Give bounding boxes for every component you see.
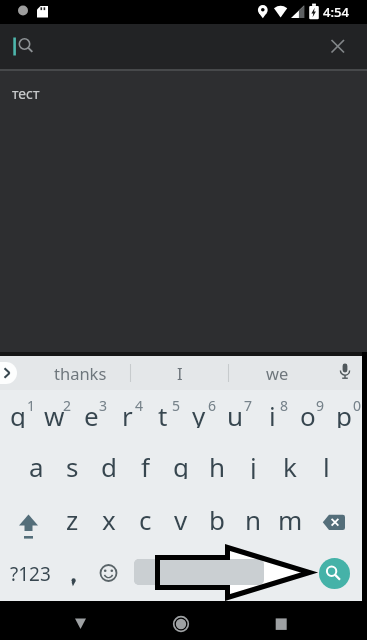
button[interactable]: j	[235, 449, 271, 479]
staticText: s	[66, 449, 79, 479]
staticText: 4:54	[323, 3, 349, 21]
staticText: i	[269, 398, 276, 428]
staticText: g	[173, 449, 189, 479]
button[interactable]: z	[54, 502, 90, 532]
staticText: q	[10, 398, 26, 428]
button[interactable]: g	[163, 449, 199, 479]
staticText: l	[323, 449, 330, 479]
button[interactable]	[54, 556, 90, 595]
staticText: n	[245, 502, 262, 532]
button[interactable]: a	[18, 449, 54, 479]
button[interactable]: we	[247, 358, 307, 388]
staticText: 3	[99, 396, 108, 412]
staticText: y	[192, 398, 206, 428]
staticText: d	[101, 449, 117, 479]
button[interactable]: n	[235, 502, 271, 532]
button[interactable]: 4	[129, 396, 149, 412]
button[interactable]: i	[254, 398, 290, 428]
button[interactable]: 8	[274, 396, 294, 412]
button[interactable]: c	[127, 502, 163, 532]
staticText: v	[174, 502, 188, 532]
staticText: we	[266, 362, 289, 384]
button[interactable]: I	[150, 358, 210, 388]
button[interactable]	[90, 556, 126, 595]
staticText: j	[250, 449, 257, 479]
button[interactable]: 2	[57, 396, 77, 412]
button[interactable]: q	[0, 398, 36, 428]
button[interactable]	[134, 559, 264, 585]
staticText: 5	[172, 396, 181, 412]
button[interactable]	[62, 606, 99, 640]
staticText: тест	[12, 84, 40, 103]
staticText: 0	[353, 396, 362, 412]
button[interactable]: 5	[166, 396, 186, 412]
staticText: 8	[280, 396, 289, 412]
button[interactable]: b	[199, 502, 235, 532]
staticText: f	[141, 449, 150, 479]
staticText: b	[209, 502, 225, 532]
staticText: h	[209, 449, 226, 479]
button[interactable]: u	[217, 398, 253, 428]
button[interactable]: v	[163, 502, 199, 532]
button[interactable]	[0, 24, 367, 69]
staticText: ?123	[10, 561, 51, 587]
staticText: 7	[244, 396, 253, 412]
staticText: I	[177, 362, 183, 384]
staticText: thanks	[54, 362, 107, 384]
button[interactable]: thanks	[35, 358, 125, 388]
button[interactable]: m	[272, 502, 308, 532]
button[interactable]: x	[91, 502, 127, 532]
button[interactable]: 9	[310, 396, 330, 412]
button[interactable]: s	[54, 449, 90, 479]
button[interactable]	[308, 503, 362, 542]
button[interactable]: 6	[202, 396, 222, 412]
staticText: u	[227, 398, 244, 428]
button[interactable]: l	[308, 449, 344, 479]
staticText: z	[66, 502, 79, 532]
staticText: o	[300, 398, 316, 428]
staticText: 9	[316, 396, 325, 412]
button[interactable]: 3	[93, 396, 113, 412]
button[interactable]: o	[290, 398, 326, 428]
button[interactable]: тест	[1, 83, 51, 103]
staticText: 1	[27, 396, 36, 412]
staticText: 2	[63, 396, 72, 412]
staticText: 6	[208, 396, 217, 412]
staticText: t	[158, 398, 168, 428]
button[interactable]	[0, 362, 17, 384]
button[interactable]: 0	[347, 396, 367, 412]
staticText: p	[336, 398, 352, 428]
button[interactable]: 7	[238, 396, 258, 412]
button[interactable]: h	[199, 449, 235, 479]
button[interactable]: t	[145, 398, 181, 428]
staticText: x	[102, 502, 116, 532]
staticText: k	[283, 449, 297, 479]
staticText: c	[139, 502, 152, 532]
staticText: w	[44, 398, 65, 428]
button[interactable]	[322, 32, 350, 60]
button[interactable]	[262, 606, 300, 640]
staticText: m	[278, 502, 303, 532]
button[interactable]: d	[91, 449, 127, 479]
button[interactable]: 4:54	[316, 2, 356, 22]
button[interactable]: e	[73, 398, 109, 428]
button[interactable]: r	[109, 398, 145, 428]
button[interactable]: k	[272, 449, 308, 479]
staticText: a	[29, 449, 44, 479]
button[interactable]: y	[181, 398, 217, 428]
button[interactable]	[162, 606, 200, 640]
button[interactable]: ?123	[6, 559, 54, 589]
button[interactable]	[330, 358, 360, 388]
staticText: r	[122, 398, 133, 428]
staticText: e	[84, 398, 99, 428]
staticText: 4	[135, 396, 144, 412]
button[interactable]: 1	[21, 396, 41, 412]
button[interactable]: f	[127, 449, 163, 479]
button[interactable]: p	[326, 398, 362, 428]
button[interactable]	[0, 503, 54, 542]
button[interactable]	[319, 558, 350, 589]
button[interactable]: w	[36, 398, 72, 428]
